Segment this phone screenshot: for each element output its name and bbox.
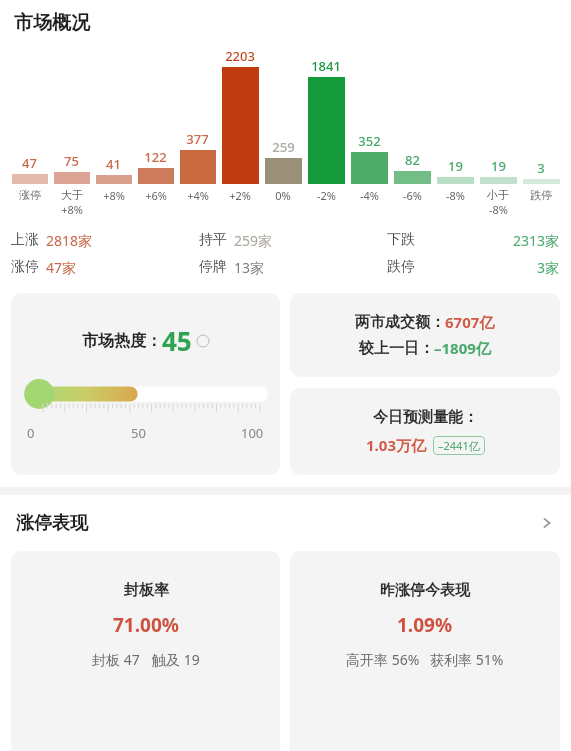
staticText: 2313家 [513,231,560,250]
staticText: 涨停 [11,258,39,276]
staticText: –1809亿 [434,338,491,358]
staticText: 41 [106,155,121,173]
staticText: 1841 [311,57,341,75]
staticText: +8% [61,202,83,217]
staticText: 大于 [61,188,83,202]
staticText: -8% [446,188,465,203]
staticText: 市场概况 [14,11,90,35]
staticText: 259家 [234,231,273,250]
staticText: 19 [448,157,463,175]
staticText: 涨停 [19,188,41,202]
staticText: 122 [144,148,167,166]
staticText: +4% [187,188,209,203]
staticText: 0% [275,188,291,203]
staticText: 75 [64,152,79,170]
staticText: 2818家 [46,231,93,250]
staticText: –2441亿 [438,438,480,453]
staticText: 下跌 [387,231,415,249]
other: Info [197,335,209,347]
staticText: 今日预测量能： [373,408,478,427]
button[interactable]: 市场热度： [11,293,280,475]
staticText: 获利率 51% [430,650,504,669]
staticText: +8% [103,188,125,203]
staticText: 涨停表现 [16,512,88,535]
staticText: 50 [131,424,146,442]
staticText: 47家 [46,258,77,277]
button[interactable]: 两市成交额： [290,293,560,377]
button[interactable]: 今日预测量能： [290,388,560,475]
staticText: 1.03万亿 [366,435,426,455]
staticText: 19 [491,157,506,175]
staticText: -2% [317,188,336,203]
staticText: 3 [537,159,545,177]
staticText: 82 [405,151,420,169]
staticText: 小于 [487,188,509,202]
staticText: 封板率 [124,581,169,600]
staticText: 1.09% [397,612,453,638]
button[interactable]: 封板率 [11,551,280,751]
staticText: 0 [27,424,35,442]
staticText: -8% [489,202,508,217]
staticText: 377 [186,130,209,148]
staticText: 45 [162,323,192,358]
button[interactable]: 昨涨停今表现 [290,551,560,751]
staticText: 触及 19 [152,650,200,669]
staticText: +6% [145,188,167,203]
staticText: +2% [229,188,251,203]
staticText: 13家 [234,258,265,277]
staticText: 跌停 [530,188,552,202]
staticText: 上涨 [11,231,39,249]
button[interactable]: 涨停表现 [16,495,555,551]
staticText: 两市成交额： [355,313,445,332]
staticText: 高开率 56% [346,650,420,669]
staticText: -4% [360,188,379,203]
staticText: 封板 47 [92,650,140,669]
staticText: 较上一日： [359,339,434,358]
staticText: 3家 [537,258,560,277]
staticText: 市场热度： [82,331,162,351]
staticText: 持平 [199,231,227,249]
staticText: 352 [358,132,381,150]
staticText: 47 [22,154,37,172]
staticText: 昨涨停今表现 [380,581,470,600]
staticText: 停牌 [199,258,227,276]
staticText: 259 [272,138,295,156]
staticText: 跌停 [387,258,415,276]
staticText: 6707亿 [445,312,495,332]
other: More [539,515,555,531]
staticText: -6% [403,188,422,203]
staticText: 2203 [225,47,255,65]
staticText: 100 [241,424,264,442]
staticText: 71.00% [113,612,179,638]
